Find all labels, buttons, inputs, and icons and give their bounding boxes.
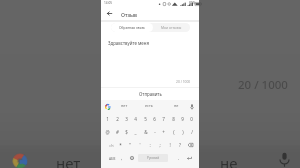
staticText: 20 / 1000 (238, 77, 288, 93)
button[interactable]: Мои отзывы (153, 23, 190, 32)
button[interactable]: 7 (159, 113, 168, 124)
staticText: / (191, 129, 193, 135)
button[interactable]: 3 (122, 113, 131, 124)
staticText: Мои отзывы (161, 25, 182, 30)
staticText: ? (179, 142, 181, 148)
button[interactable]: Enter (184, 152, 195, 163)
staticText: Здравствуйте меня (108, 40, 149, 46)
staticText: _ (134, 129, 137, 135)
staticText: # (116, 129, 119, 135)
staticText: 7 (162, 116, 165, 122)
button[interactable]: ; (155, 139, 165, 150)
staticText: нет (56, 153, 81, 168)
staticText: нет (121, 103, 128, 108)
staticText: , (121, 155, 123, 161)
button[interactable]: 0 (187, 113, 196, 124)
staticText: 6 (153, 116, 156, 122)
staticText: 2 (116, 116, 119, 122)
staticText: ' (139, 142, 141, 148)
button[interactable]: АБВ (106, 152, 118, 163)
button[interactable]: Отправить (101, 88, 199, 100)
button[interactable]: =\< (106, 139, 116, 150)
staticText: 4 (134, 116, 137, 122)
staticText: : (149, 142, 151, 148)
button[interactable]: Back (103, 7, 116, 20)
staticText: $ (125, 129, 128, 135)
button[interactable]: $ (122, 126, 131, 137)
button[interactable]: 5 (141, 113, 150, 124)
staticText: Обратная связь (119, 25, 145, 30)
staticText: + (162, 129, 165, 135)
staticText: Отзыв (121, 11, 138, 18)
button[interactable]: Backspace (185, 139, 195, 150)
button[interactable]: ? (175, 139, 185, 150)
staticText: 0 (190, 116, 193, 122)
button[interactable]: 9 (178, 113, 187, 124)
staticText: Русский (147, 156, 160, 160)
staticText: 89% (189, 1, 196, 5)
staticText: 5 (144, 116, 147, 122)
button[interactable]: " (125, 139, 135, 150)
staticText: ! (169, 142, 171, 148)
button[interactable]: 2 (113, 113, 122, 124)
button[interactable]: ' (135, 139, 145, 150)
button[interactable]: , (117, 152, 126, 163)
button[interactable]: . (174, 152, 183, 163)
staticText: не (220, 153, 238, 168)
staticText: " (129, 142, 131, 148)
staticText: Отправить (139, 91, 162, 97)
button[interactable]: @ (103, 126, 112, 137)
staticText: 8 (172, 116, 175, 122)
button[interactable]: : (145, 139, 155, 150)
button[interactable]: * (115, 139, 125, 150)
staticText: & (144, 129, 148, 135)
staticText: 20 / 1000 (176, 79, 191, 83)
staticText: 1 (106, 116, 109, 122)
staticText: ) (182, 129, 184, 135)
button[interactable]: ! (165, 139, 175, 150)
staticText: АБВ (109, 156, 116, 160)
staticText: * (119, 142, 122, 148)
staticText: ( (173, 129, 175, 135)
staticText: - (154, 129, 156, 135)
staticText: есть (145, 103, 153, 108)
button[interactable]: не (165, 100, 187, 111)
button[interactable]: _ (131, 126, 140, 137)
button[interactable]: 1 (103, 113, 112, 124)
button[interactable]: есть (138, 100, 160, 111)
button[interactable]: нет (113, 100, 135, 111)
button[interactable]: Обратная связь (111, 23, 153, 32)
button[interactable]: / (187, 126, 196, 137)
button[interactable]: 4 (131, 113, 140, 124)
staticText: не (174, 103, 179, 108)
button[interactable]: & (141, 126, 150, 137)
button[interactable]: Русский (138, 154, 168, 162)
button[interactable]: ( (169, 126, 178, 137)
button[interactable]: # (113, 126, 122, 137)
staticText: . (178, 155, 180, 161)
staticText: 9 (181, 116, 184, 122)
staticText: 3 (125, 116, 128, 122)
staticText: =\< (109, 143, 114, 147)
button[interactable]: ) (178, 126, 187, 137)
button[interactable]: 6 (150, 113, 159, 124)
button[interactable]: + (159, 126, 168, 137)
button[interactable]: - (150, 126, 159, 137)
staticText: @ (105, 129, 110, 135)
staticText: ; (159, 142, 161, 148)
staticText: 14:05 (104, 1, 113, 5)
button[interactable]: 8 (169, 113, 178, 124)
button[interactable]: Emoji (127, 152, 136, 163)
